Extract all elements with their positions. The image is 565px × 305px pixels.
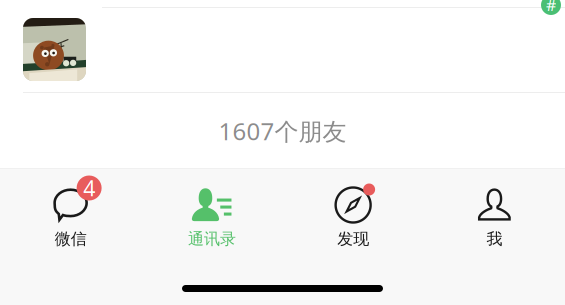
- button[interactable]: 通讯录: [141, 169, 282, 257]
- button[interactable]: Jump to section #: [541, 0, 561, 15]
- staticText: #: [546, 0, 556, 16]
- staticText: 1607个朋友: [218, 115, 346, 147]
- button[interactable]: 发现: [282, 169, 424, 257]
- staticText: 微信: [55, 229, 87, 249]
- staticText: 我: [486, 229, 502, 249]
- staticText: 4: [83, 174, 95, 202]
- button[interactable]: [0, 8, 565, 93]
- staticText: 发现: [337, 229, 369, 249]
- button[interactable]: 4: [0, 169, 141, 257]
- staticText: 通讯录: [188, 229, 236, 249]
- button[interactable]: 我: [424, 169, 565, 257]
